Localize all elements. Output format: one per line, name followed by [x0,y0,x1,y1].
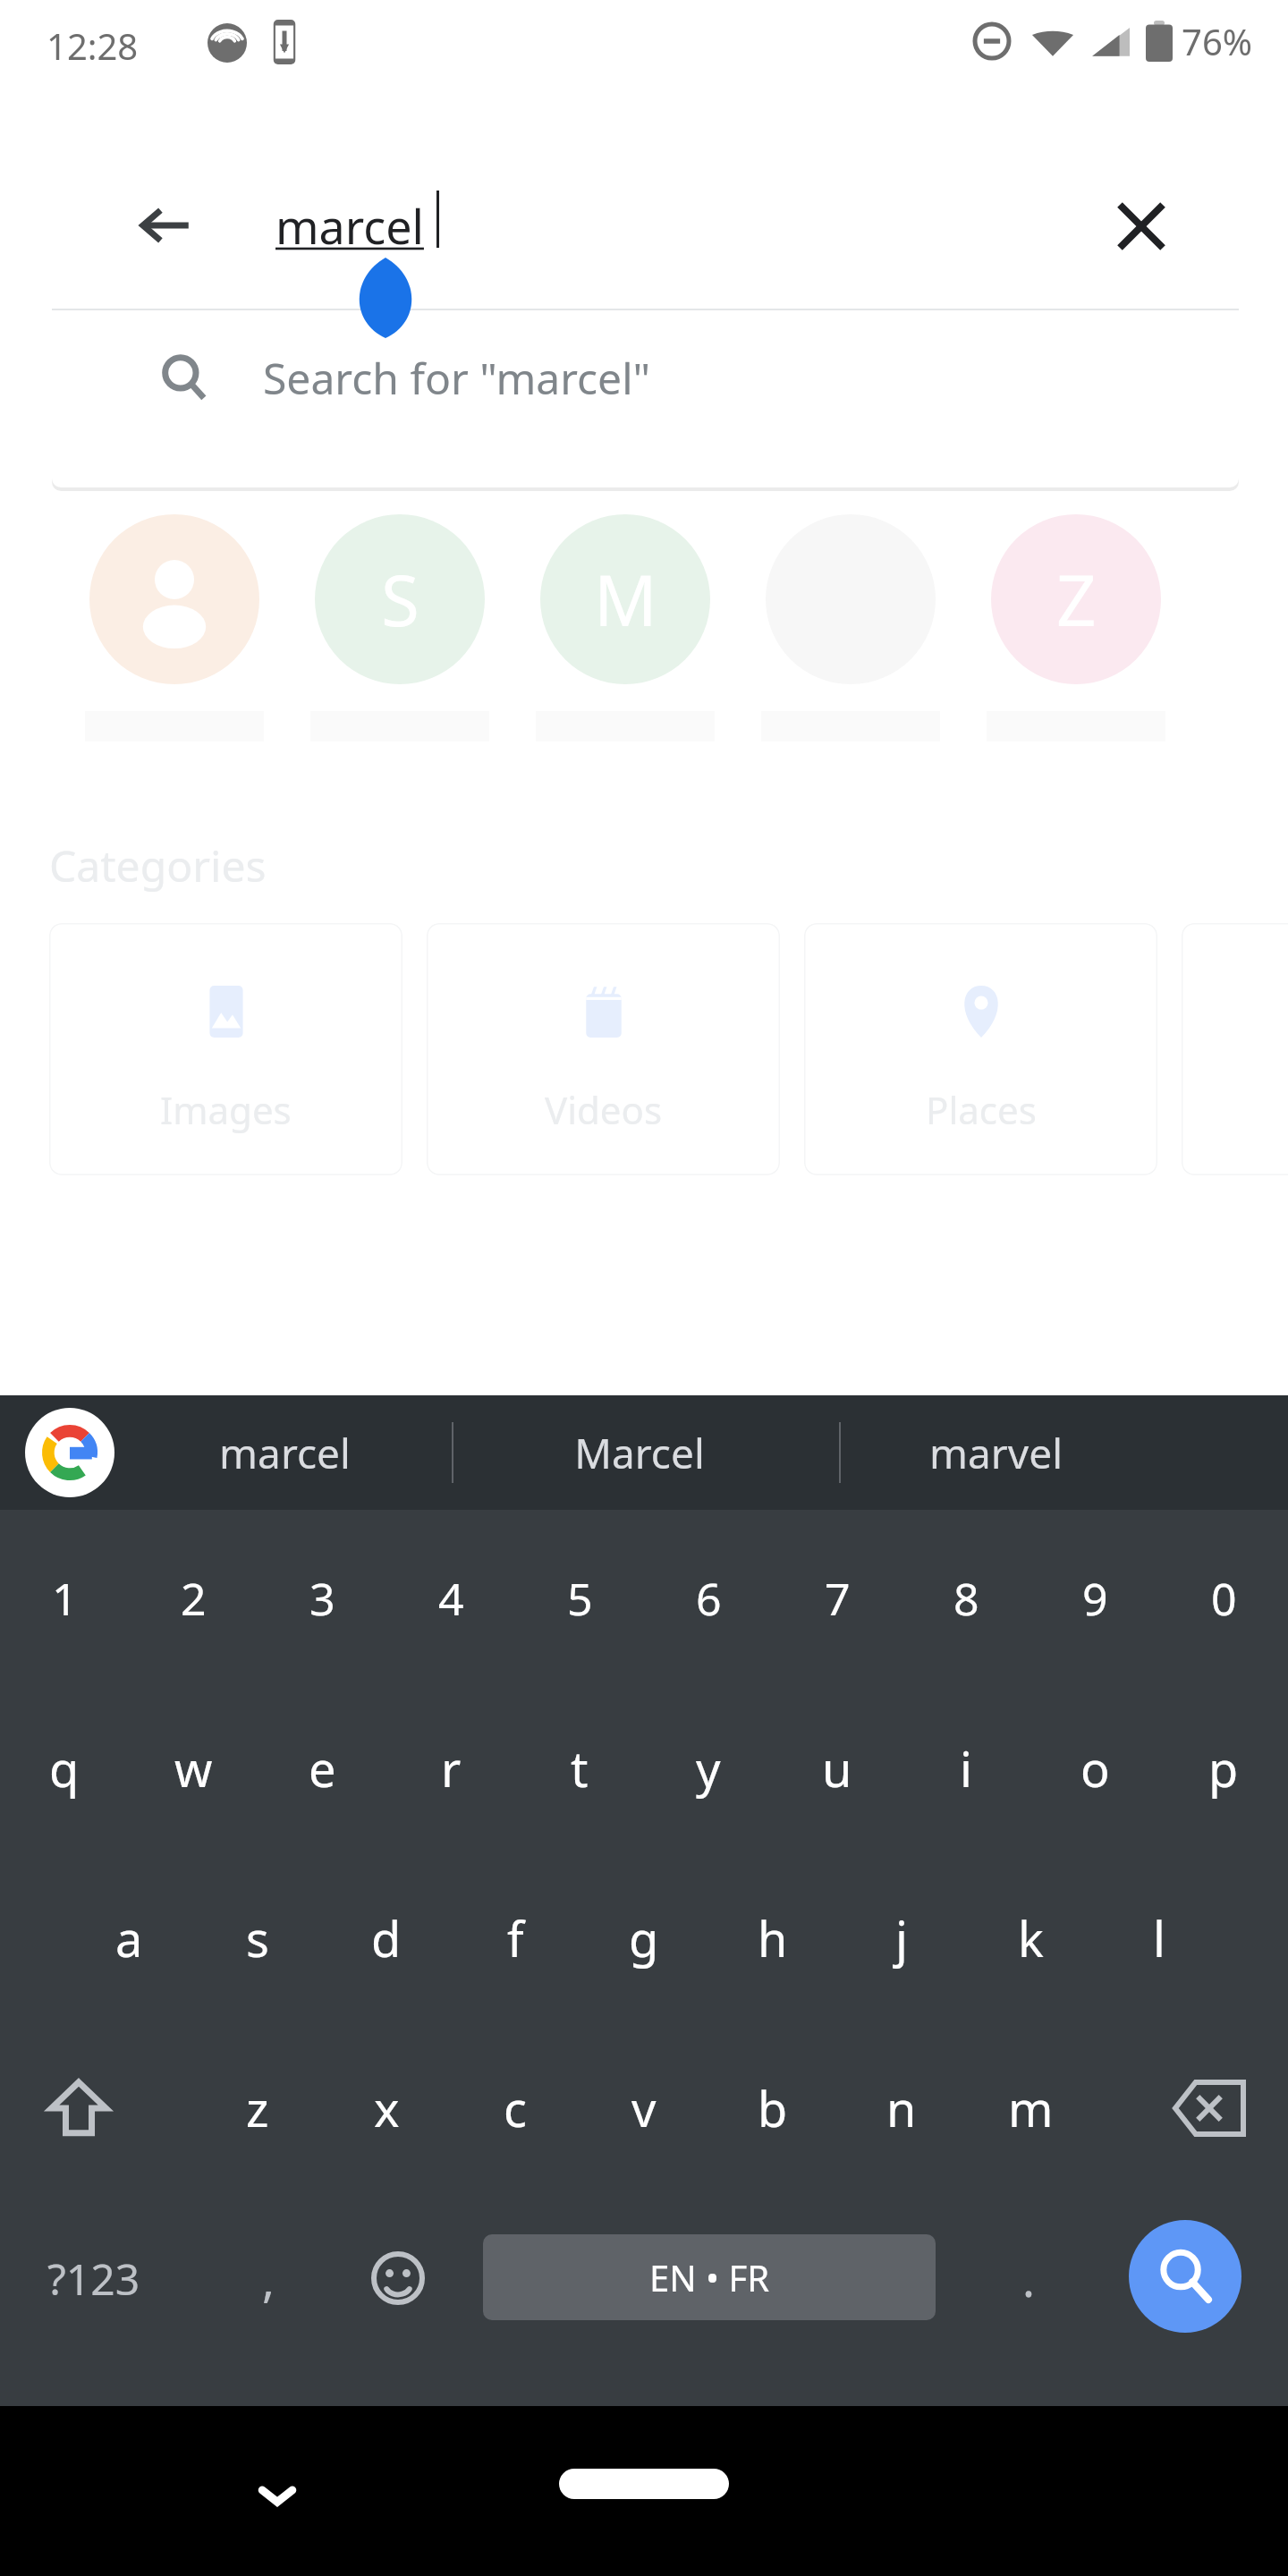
staticText: M [594,552,657,647]
button[interactable]: ?123 [0,2193,188,2363]
button[interactable]: g [580,1853,708,2023]
button[interactable]: Home [559,2469,729,2499]
button[interactable] [766,514,936,684]
button[interactable]: u [773,1683,902,1853]
button[interactable]: c [451,2023,580,2193]
button[interactable]: 5 [515,1513,644,1683]
button[interactable]: Search [1129,2220,1241,2333]
staticText: ?123 [47,2250,140,2308]
button[interactable]: Search for "marcel" [52,310,1239,445]
button[interactable]: 6 [644,1513,773,1683]
button[interactable]: Places [804,923,1157,1175]
staticText: y [696,1735,721,1801]
staticText: l [1153,1905,1165,1971]
staticText: n [886,2075,917,2141]
staticText: EN • FR [649,2253,770,2301]
staticText: p [1208,1735,1239,1801]
button[interactable]: Hide keyboard [224,2442,331,2549]
button[interactable]: M [540,514,710,684]
button[interactable]: f [451,1853,580,2023]
staticText: c [504,2075,527,2141]
button[interactable]: 2 [129,1513,258,1683]
button[interactable]: Back [131,191,200,260]
button[interactable]: y [644,1683,773,1853]
button[interactable]: q [0,1683,129,1853]
button[interactable]: 9 [1030,1513,1159,1683]
button[interactable]: Videos [427,923,780,1175]
button[interactable]: Backspace [1138,2023,1281,2193]
staticText: m [1008,2075,1054,2141]
staticText: Videos [545,1084,663,1135]
button[interactable]: Emoji [335,2193,461,2363]
staticText: 5 [567,1568,593,1629]
button[interactable]: h [708,1853,837,2023]
button[interactable]: l [1095,1853,1224,2023]
button[interactable]: x [322,2023,451,2193]
button[interactable]: i [902,1683,1030,1853]
button[interactable]: Z [991,514,1161,684]
button[interactable]: Clear query [1103,188,1180,265]
staticText: Search for "marcel" [263,349,651,407]
staticText: Images [160,1084,292,1135]
button[interactable]: marcel [114,1395,454,1510]
staticText: marcel [275,194,424,258]
staticText: 7 [825,1568,851,1629]
button[interactable]: Google [25,1408,114,1497]
staticText: k [1018,1905,1044,1971]
button[interactable]: k [966,1853,1095,2023]
staticText: r [441,1735,462,1801]
staticText: j [895,1905,908,1971]
button[interactable]: , [215,2193,322,2363]
staticText: e [309,1735,336,1801]
button[interactable]: w [129,1683,258,1853]
button[interactable]: S [315,514,485,684]
staticText: z [246,2075,269,2141]
button[interactable]: 1 [0,1513,129,1683]
button[interactable]: e [258,1683,386,1853]
button[interactable]: Marcel [470,1395,809,1510]
button[interactable]: m [966,2023,1095,2193]
staticText: s [246,1905,269,1971]
staticText: 2 [181,1568,207,1629]
staticText: q [49,1735,80,1801]
button[interactable]: 7 [773,1513,902,1683]
button[interactable]: Images [49,923,402,1175]
staticText: marvel [929,1425,1063,1481]
staticText: u [822,1735,852,1801]
staticText: a [115,1905,143,1971]
button[interactable]: Shift [7,2023,150,2193]
button[interactable]: 0 [1159,1513,1288,1683]
button[interactable]: 3 [258,1513,386,1683]
button[interactable]: j [837,1853,966,2023]
button[interactable]: o [1030,1683,1159,1853]
staticText: Z [1056,552,1097,647]
button[interactable]: p [1159,1683,1288,1853]
staticText: o [1080,1735,1110,1801]
button[interactable]: s [193,1853,322,2023]
button[interactable]: b [708,2023,837,2193]
button[interactable]: z [193,2023,322,2193]
staticText: 8 [953,1568,979,1629]
button[interactable]: t [515,1683,644,1853]
staticText: 9 [1082,1568,1108,1629]
button[interactable] [89,514,259,684]
button[interactable]: n [837,2023,966,2193]
staticText: S [381,552,419,647]
button[interactable]: 4 [386,1513,515,1683]
staticText: 76% [1182,17,1252,65]
staticText: w [174,1735,213,1801]
staticText: 0 [1211,1568,1237,1629]
staticText: t [571,1735,589,1801]
button[interactable]: d [322,1853,451,2023]
button[interactable]: v [580,2023,708,2193]
staticText: x [374,2075,400,2141]
button[interactable]: a [64,1853,193,2023]
button[interactable]: EN • FR [483,2234,936,2320]
staticText: b [758,2075,788,2141]
button[interactable]: r [386,1683,515,1853]
button[interactable]: marvel [826,1395,1165,1510]
button[interactable]: . [966,2193,1091,2363]
staticText: , [262,2247,275,2310]
button[interactable]: 8 [902,1513,1030,1683]
